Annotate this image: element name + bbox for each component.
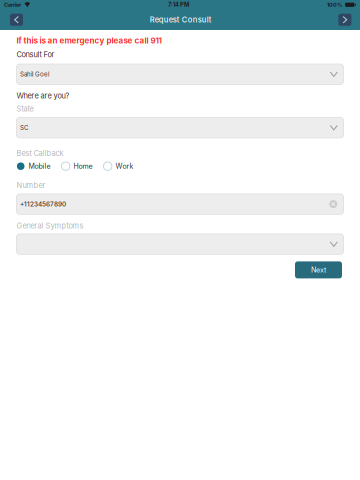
staticText: Home bbox=[73, 162, 92, 170]
staticText: +11234567890 bbox=[20, 200, 66, 208]
button[interactable] bbox=[16, 234, 343, 254]
staticText: Mobile bbox=[28, 162, 50, 170]
staticText: Number bbox=[16, 181, 45, 190]
staticText: State bbox=[16, 104, 33, 113]
button[interactable]: Forward bbox=[338, 14, 351, 26]
staticText: Sahil Goel bbox=[20, 70, 49, 78]
staticText: 100% bbox=[327, 1, 343, 8]
button[interactable]: Back bbox=[10, 14, 23, 26]
button[interactable]: Home bbox=[61, 162, 92, 171]
button[interactable]: Next bbox=[295, 261, 342, 278]
staticText: Work bbox=[115, 162, 133, 170]
button[interactable]: Sahil Goel bbox=[16, 64, 343, 84]
staticText: Where are you? bbox=[16, 91, 69, 100]
staticText: If this is an emergency please call 911 bbox=[16, 36, 161, 46]
button[interactable]: SC bbox=[16, 117, 343, 138]
staticText: Next bbox=[311, 265, 326, 274]
button[interactable]: Work bbox=[103, 162, 133, 171]
staticText: SC bbox=[20, 124, 28, 131]
staticText: 7:14 PM bbox=[168, 1, 189, 8]
staticText: Carrier bbox=[4, 1, 21, 8]
staticText: Consult For bbox=[16, 50, 54, 59]
staticText: Request Consult bbox=[150, 15, 212, 24]
staticText: General Symptoms bbox=[16, 221, 83, 230]
staticText: Best Callback bbox=[16, 149, 63, 158]
button[interactable]: Mobile bbox=[16, 162, 50, 171]
